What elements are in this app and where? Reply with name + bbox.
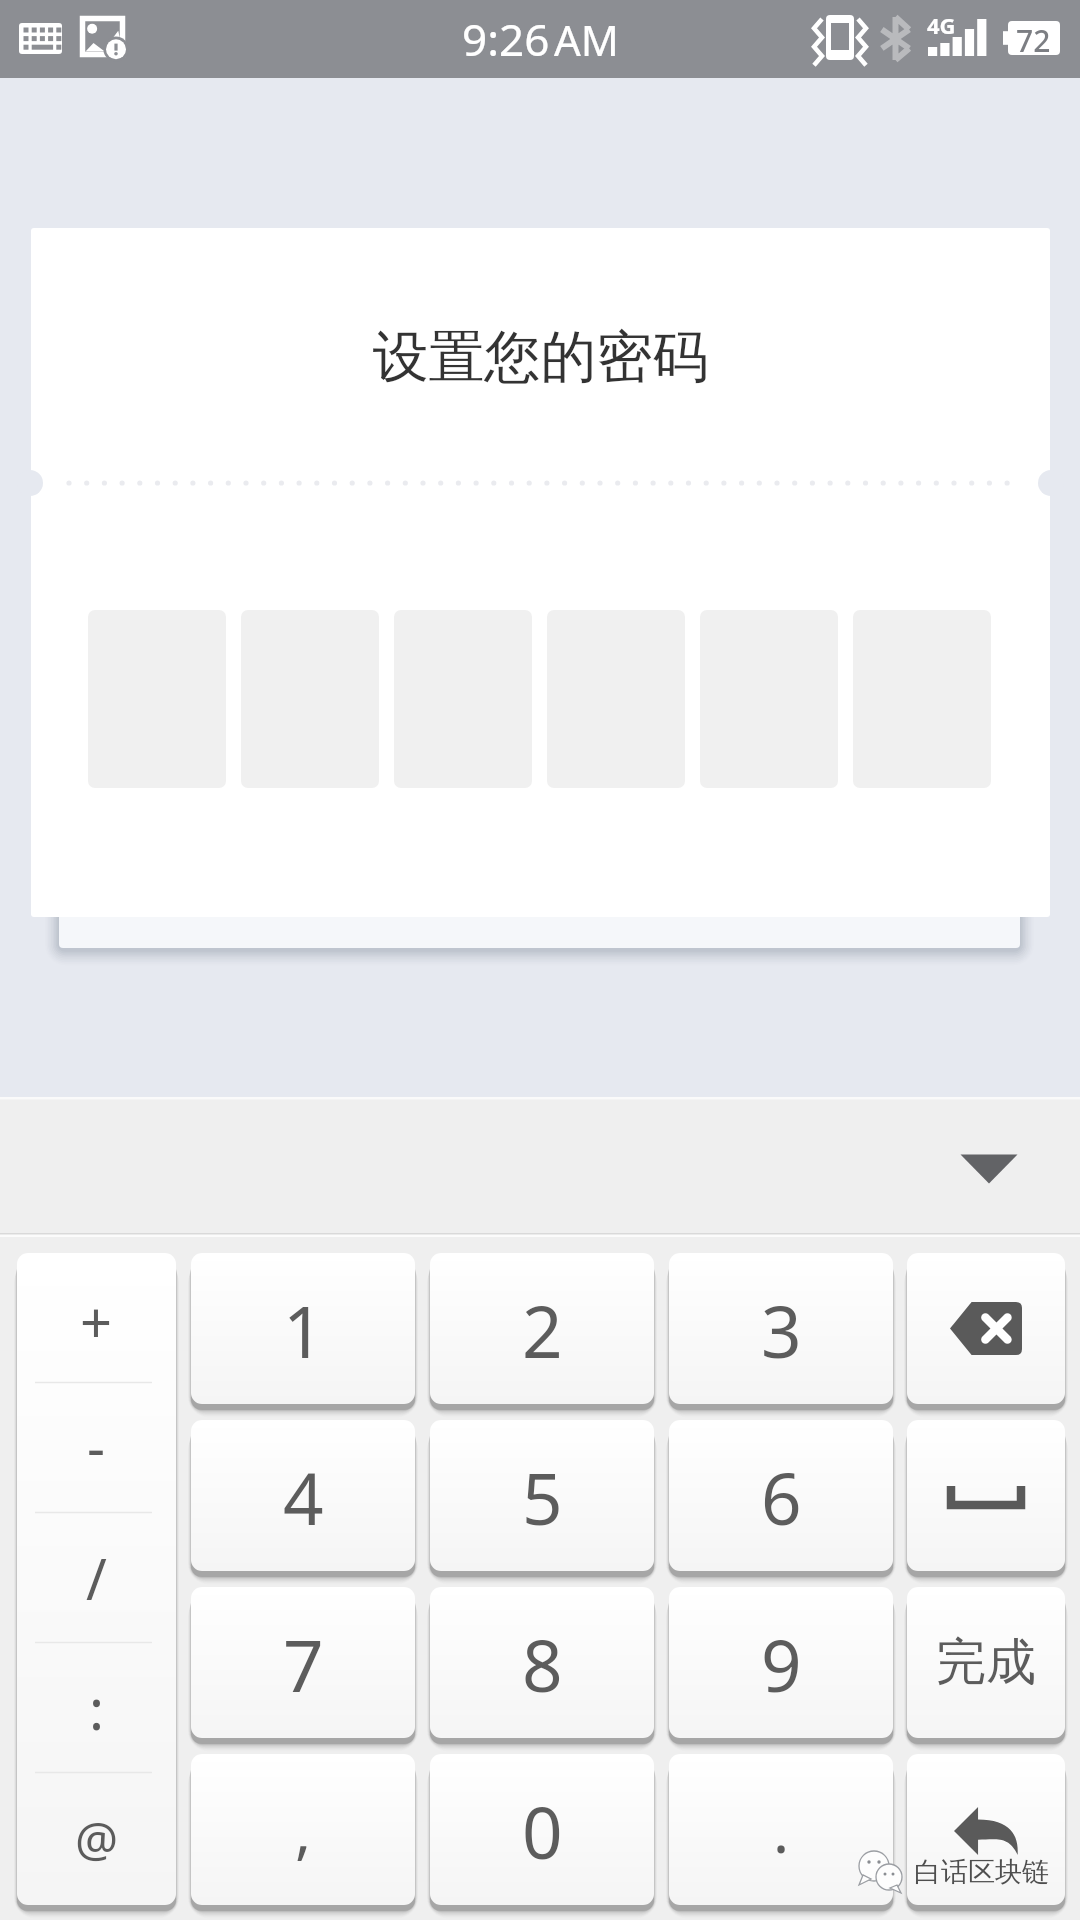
staticText: 4 [283,1449,324,1546]
button[interactable]: Space [907,1420,1065,1571]
other: Space [907,1420,1065,1571]
button[interactable]: 9 [669,1587,893,1738]
staticText: 7 [283,1616,324,1713]
other: Backspace [907,1253,1065,1404]
button[interactable]: : [17,1643,176,1773]
button[interactable]: 完成 [907,1587,1065,1738]
staticText: / [86,1540,107,1616]
button[interactable]: Backspace [907,1253,1065,1404]
button[interactable]: 1 [191,1253,415,1404]
button[interactable]: 0 [430,1754,654,1905]
button[interactable]: 4 [191,1420,415,1571]
staticText: @ [75,1806,119,1871]
button[interactable]: + [17,1253,176,1383]
staticText: 完成 [936,1631,1036,1694]
staticText: 1 [283,1282,324,1379]
staticText: + [80,1283,113,1359]
button[interactable]: 5 [430,1420,654,1571]
button[interactable]: 6 [669,1420,893,1571]
button[interactable]: 3 [669,1253,893,1404]
staticText: 8 [522,1616,563,1713]
button[interactable]: 2 [430,1253,654,1404]
staticText: . [773,1789,790,1871]
button[interactable]: , [191,1754,415,1905]
staticText: 9:26 [462,9,550,69]
button[interactable]: - [17,1383,176,1513]
other: Enter [907,1754,1065,1905]
staticText: : [89,1670,105,1746]
staticText: , [295,1789,312,1871]
staticText: 白话区块链 [914,1855,1049,1889]
button[interactable]: / [17,1513,176,1643]
button[interactable]: 7 [191,1587,415,1738]
staticText: 2 [522,1282,563,1379]
staticText: 0 [522,1783,563,1880]
staticText: 3 [761,1282,802,1379]
button[interactable]: @ [17,1773,176,1903]
button[interactable]: Hide keyboard [929,1097,1049,1233]
staticText: 设置您的密码 [31,322,1050,393]
staticText: - [87,1408,106,1484]
staticText: 4G [927,10,956,40]
staticText: AM [554,11,619,68]
staticText: 72 [1016,20,1051,61]
staticText: 9 [761,1616,802,1713]
button[interactable]: . [669,1754,893,1905]
button[interactable]: Enter [907,1754,1065,1905]
staticText: 6 [761,1449,802,1546]
button[interactable]: 8 [430,1587,654,1738]
staticText: 5 [522,1449,563,1546]
